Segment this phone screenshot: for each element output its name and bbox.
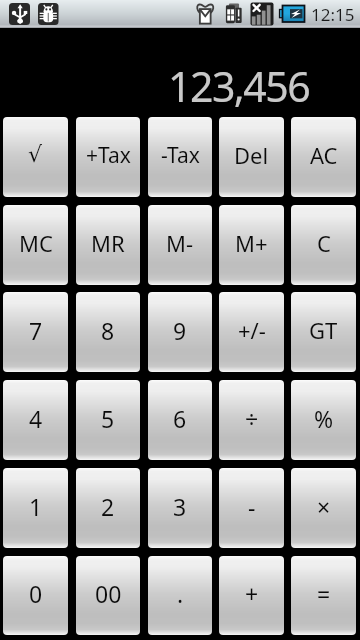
staticText: Del [234, 140, 269, 170]
button[interactable]: 1 [3, 468, 68, 548]
staticText: ÷ [245, 403, 259, 434]
button[interactable]: 0 [3, 556, 68, 635]
staticText: 0 [29, 578, 43, 609]
button[interactable]: + [219, 556, 284, 635]
button[interactable]: MR [76, 205, 140, 285]
button[interactable]: × [291, 468, 356, 548]
staticText: C [317, 228, 331, 258]
button[interactable]: = [291, 556, 356, 635]
staticText: 6 [173, 403, 187, 434]
staticText: 2 [101, 491, 115, 522]
staticText: GT [309, 315, 338, 345]
staticText: 00 [95, 578, 122, 609]
staticText: MR [91, 228, 125, 258]
button[interactable]: 6 [148, 380, 212, 460]
staticText: . [177, 578, 184, 609]
staticText: M- [166, 228, 194, 258]
button[interactable]: - [219, 468, 284, 548]
button[interactable]: +Tax [76, 117, 140, 197]
staticText: AC [310, 140, 338, 170]
button[interactable]: C [291, 205, 356, 285]
button[interactable]: 9 [148, 292, 212, 372]
staticText: 5 [101, 403, 115, 434]
button[interactable]: % [291, 380, 356, 460]
staticText: = [317, 578, 331, 609]
button[interactable]: 2 [76, 468, 140, 548]
button[interactable]: √ [3, 117, 68, 197]
staticText: √ [28, 142, 43, 168]
staticText: 3 [173, 491, 187, 522]
button[interactable]: 4 [3, 380, 68, 460]
button[interactable]: . [148, 556, 212, 635]
button[interactable]: MC [3, 205, 68, 285]
button[interactable]: M- [148, 205, 212, 285]
button[interactable]: Del [219, 117, 284, 197]
button[interactable]: 7 [3, 292, 68, 372]
button[interactable]: -Tax [148, 117, 212, 197]
button[interactable]: 00 [76, 556, 140, 635]
button[interactable]: M+ [219, 205, 284, 285]
staticText: + [245, 578, 259, 609]
staticText: 4 [29, 403, 43, 434]
staticText: - [248, 491, 256, 522]
staticText: M+ [235, 228, 268, 258]
staticText: +/- [238, 315, 266, 345]
staticText: +Tax [86, 141, 131, 170]
button[interactable]: 5 [76, 380, 140, 460]
button[interactable]: 3 [148, 468, 212, 548]
staticText: 9 [173, 315, 187, 346]
staticText: 1 [29, 491, 43, 522]
staticText: % [314, 403, 334, 434]
button[interactable]: 8 [76, 292, 140, 372]
button[interactable]: +/- [219, 292, 284, 372]
button[interactable]: GT [291, 292, 356, 372]
staticText: 8 [101, 315, 115, 346]
staticText: 12:15 [311, 3, 355, 26]
button[interactable]: ÷ [219, 380, 284, 460]
staticText: -Tax [161, 141, 200, 170]
staticText: × [317, 491, 331, 522]
staticText: 7 [29, 315, 43, 346]
button[interactable]: AC [291, 117, 356, 197]
staticText: 123,456 [168, 58, 310, 114]
staticText: MC [19, 228, 53, 258]
